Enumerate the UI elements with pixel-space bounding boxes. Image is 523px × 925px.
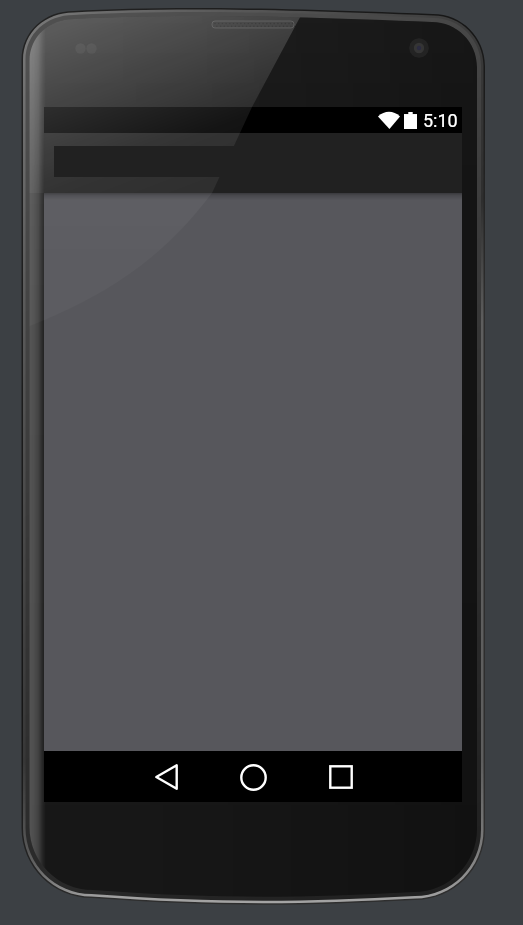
- staticText: 5:10: [423, 110, 458, 131]
- button[interactable]: Home: [230, 754, 276, 800]
- button[interactable]: Back: [143, 754, 189, 800]
- button[interactable]: Recent apps: [318, 754, 364, 800]
- button[interactable]: App bar: [44, 133, 462, 193]
